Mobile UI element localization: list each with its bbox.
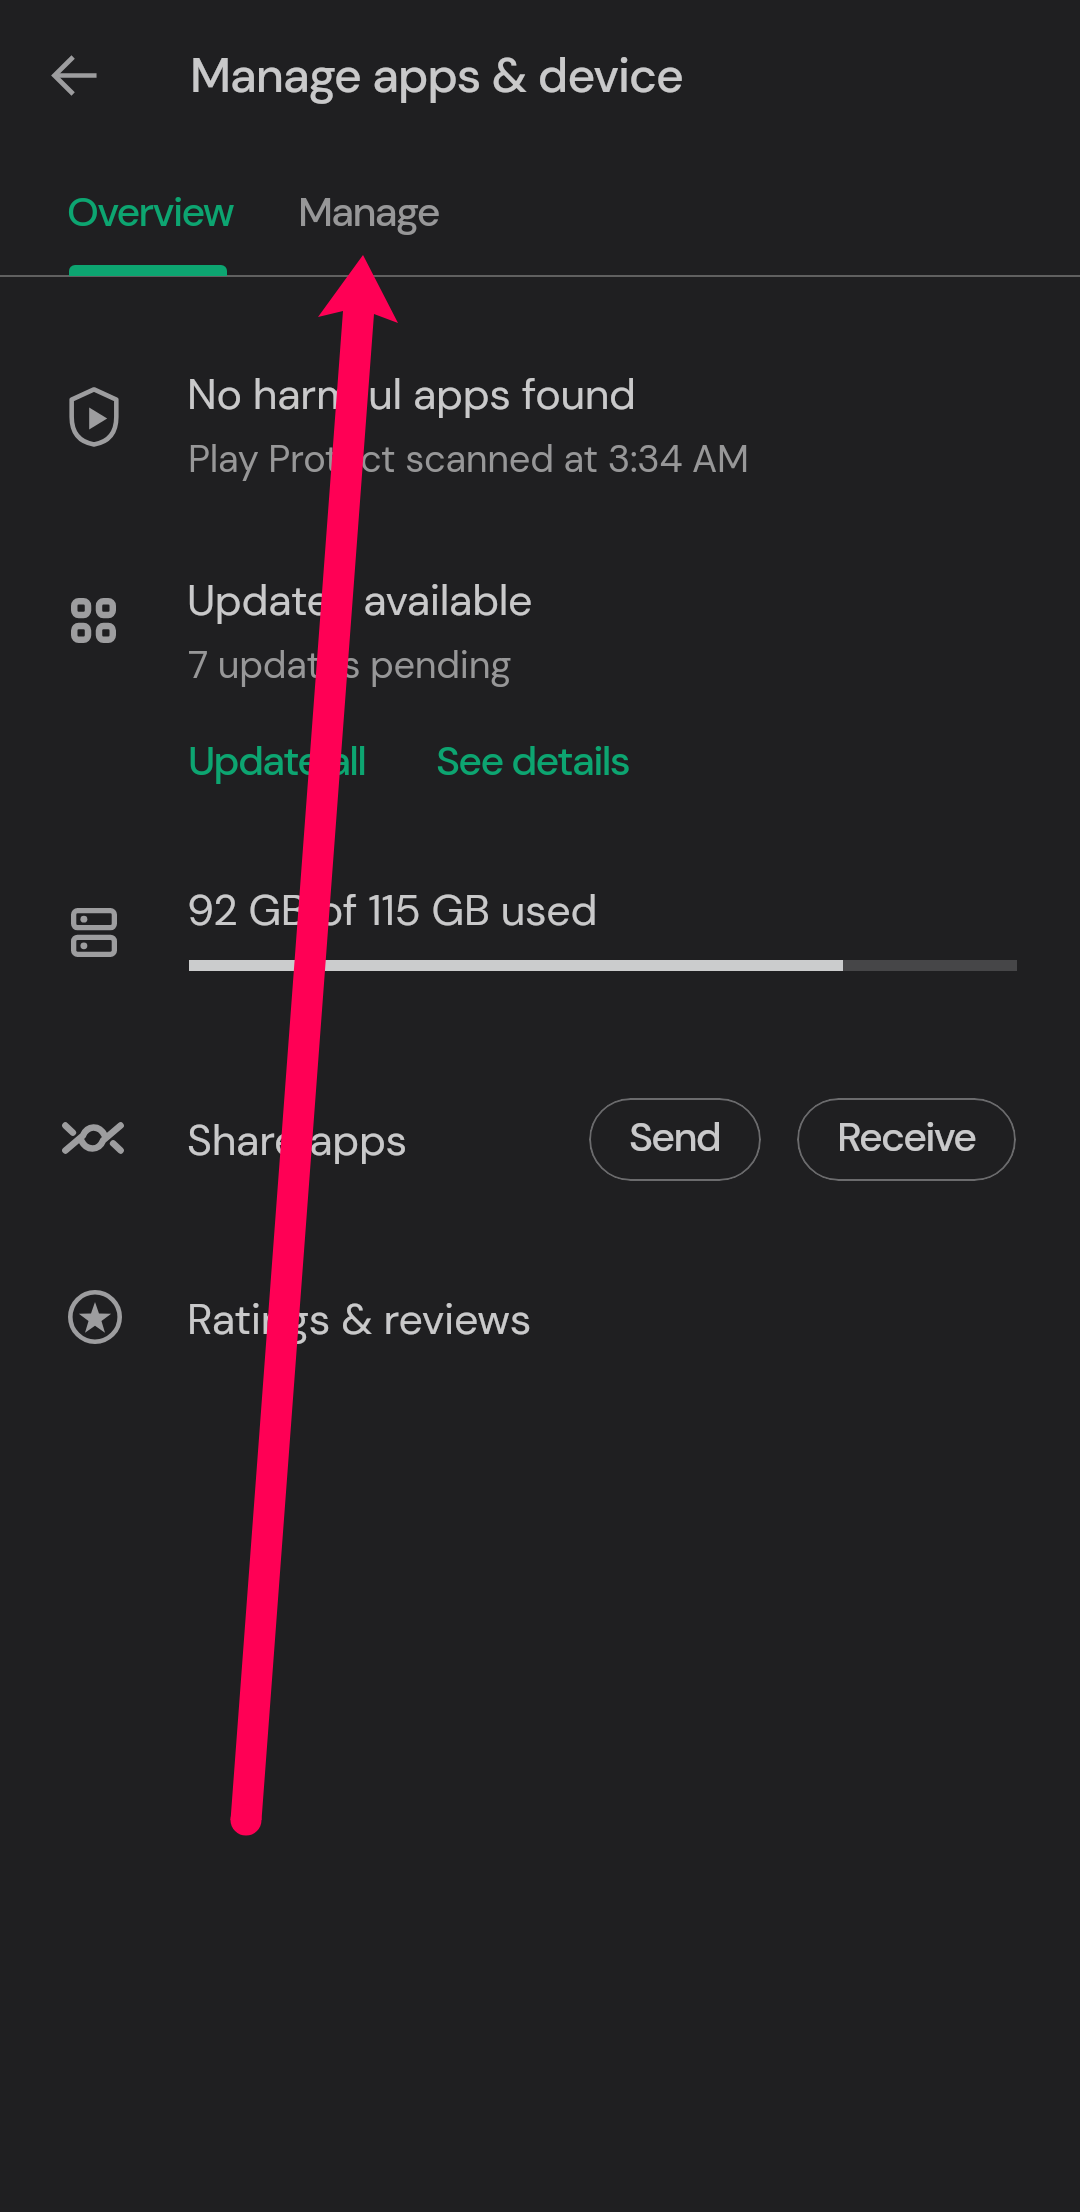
staticText: Send [629, 1110, 721, 1163]
button[interactable]: Ratings & reviews [0, 1245, 1080, 1395]
staticText: Ratings & reviews [187, 1291, 532, 1347]
staticText: Receive [837, 1110, 976, 1163]
staticText: Update all [188, 734, 366, 787]
staticText: 92 GB of 115 GB used [187, 882, 598, 938]
button[interactable]: Back [32, 33, 116, 117]
button[interactable]: Manage [296, 160, 544, 276]
button[interactable]: Send [589, 1098, 761, 1181]
staticText: Updates available [187, 572, 533, 628]
button[interactable]: No harmful apps found [0, 330, 1080, 520]
staticText: Play Protect scanned at 3:34 AM [188, 434, 749, 483]
staticText: 7 updates pending [188, 640, 512, 689]
staticText: Overview [67, 185, 234, 238]
staticText: Manage [298, 185, 439, 238]
staticText: Share apps [187, 1112, 407, 1168]
staticText: No harmful apps found [187, 366, 636, 422]
button[interactable]: See details [415, 722, 649, 798]
button[interactable]: Update all [168, 722, 386, 798]
button[interactable]: Overview [0, 160, 296, 276]
button[interactable]: Receive [797, 1098, 1016, 1181]
button[interactable]: 92 GB of 115 GB used [0, 850, 1080, 1020]
staticText: See details [436, 734, 629, 787]
staticText: Manage apps & device [190, 44, 683, 106]
